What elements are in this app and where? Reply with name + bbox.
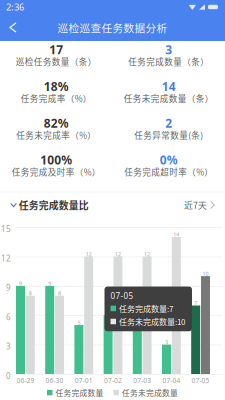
staticText: 近7天 [184, 199, 207, 211]
staticText: 82% [44, 115, 69, 131]
staticText: 9 [48, 280, 51, 287]
staticText: 巡检巡查任务数据分析 [57, 20, 167, 35]
staticText: 任务未完成数量（条） [124, 92, 214, 104]
staticText: 07-05 [192, 376, 210, 385]
staticText: 3 [165, 41, 172, 57]
staticText: 07-03 [133, 376, 151, 385]
staticText: 5 [77, 319, 80, 326]
staticText: 07-04 [162, 376, 180, 385]
staticText: 任务异常数量(条) [134, 129, 203, 141]
staticText: 0% [160, 152, 178, 168]
staticText: 06-30 [46, 376, 64, 385]
staticText: 15 [1, 224, 11, 234]
staticText: 任务完成及时率（%） [12, 166, 101, 178]
staticText: 8 [29, 290, 32, 297]
staticText: 0 [6, 370, 11, 381]
staticText: 任务未完成率（%） [16, 129, 96, 141]
staticText: 6 [136, 309, 139, 316]
staticText: 18% [44, 78, 69, 94]
button[interactable]: 返回 [0, 14, 26, 41]
staticText: 14 [173, 231, 179, 238]
staticText: 12 [144, 251, 150, 258]
staticText: 14 [162, 78, 176, 94]
staticText: 12 [86, 251, 92, 258]
staticText: 100% [40, 152, 72, 168]
staticText: 2:36 [6, 1, 24, 13]
staticText: 12 [115, 251, 121, 258]
staticText: 8 [58, 290, 61, 297]
staticText: 07-02 [104, 376, 122, 385]
staticText: 07-05 [110, 290, 133, 301]
staticText: 9 [19, 280, 22, 287]
staticText: 6 [6, 312, 11, 322]
staticText: 07-01 [75, 376, 93, 385]
staticText: 10 [202, 270, 208, 277]
staticText: 任务完成数量:7 [119, 303, 173, 314]
staticText: 任务完成数量 [55, 387, 103, 398]
staticText: 3 [6, 341, 11, 352]
staticText: 任务完成数量比 [19, 198, 89, 212]
staticText: 12 [1, 253, 11, 264]
staticText: 任务未完成数量:10 [119, 316, 185, 327]
staticText: 17 [49, 41, 63, 57]
staticText: 3 [165, 339, 168, 346]
staticText: 9 [6, 282, 11, 293]
staticText: 任务完成超时率（%） [124, 166, 213, 178]
staticText: 任务未完成数量 [122, 387, 178, 398]
staticText: 06-29 [16, 376, 34, 385]
button[interactable]: 近7天 [184, 199, 215, 211]
staticText: 7 [194, 299, 197, 307]
staticText: 巡检任务数量（条） [16, 55, 97, 68]
staticText: 任务完成率（%） [21, 92, 92, 104]
staticText: 2 [165, 115, 172, 131]
staticText: 任务完成数量（条） [128, 55, 209, 68]
